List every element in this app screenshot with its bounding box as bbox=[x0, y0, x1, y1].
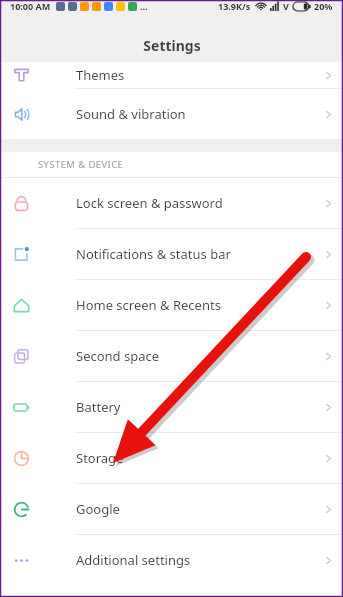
staticText: Home screen & Recents bbox=[76, 296, 221, 314]
staticText: 13.9K/s bbox=[218, 0, 251, 12]
staticText: Themes bbox=[76, 66, 125, 84]
button[interactable]: Storage bbox=[0, 433, 343, 483]
staticText: Second space bbox=[76, 347, 160, 365]
staticText: Additional settings bbox=[76, 551, 191, 569]
button[interactable]: Second space bbox=[0, 331, 343, 381]
staticText: ... bbox=[140, 0, 148, 12]
staticText: Battery bbox=[76, 398, 121, 416]
button[interactable]: Themes bbox=[0, 62, 343, 88]
button[interactable]: Sound & vibration bbox=[0, 89, 343, 139]
button[interactable]: Lock screen & password bbox=[0, 178, 343, 228]
staticText: Storage bbox=[76, 449, 124, 467]
staticText: Notifications & status bar bbox=[76, 245, 231, 263]
staticText: 10:00 AM bbox=[10, 0, 51, 12]
staticText: V bbox=[283, 0, 289, 12]
staticText: Settings bbox=[143, 36, 201, 55]
staticText: Lock screen & password bbox=[76, 194, 223, 212]
staticText: Sound & vibration bbox=[76, 105, 186, 123]
button[interactable]: Battery bbox=[0, 382, 343, 432]
button[interactable]: Home screen & Recents bbox=[0, 280, 343, 330]
staticText: SYSTEM & DEVICE bbox=[38, 158, 124, 171]
staticText: 20% bbox=[314, 0, 333, 12]
button[interactable]: Notifications & status bar bbox=[0, 229, 343, 279]
staticText: Google bbox=[76, 500, 120, 518]
button[interactable]: Google bbox=[0, 484, 343, 534]
button[interactable]: Additional settings bbox=[0, 535, 343, 585]
